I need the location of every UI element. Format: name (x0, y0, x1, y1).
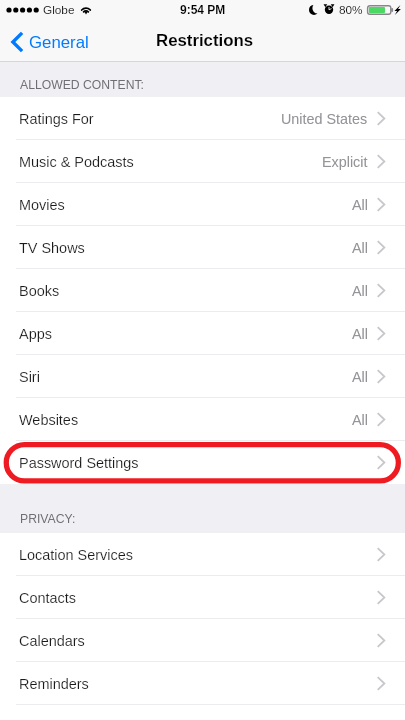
staticText: Reminders (19, 676, 89, 692)
staticText: All (352, 197, 368, 213)
staticText: Music & Podcasts (19, 154, 134, 170)
button[interactable]: Books (0, 269, 405, 312)
button[interactable]: Password Settings (0, 441, 405, 484)
button[interactable]: Calendars (0, 619, 405, 662)
staticText: All (352, 326, 368, 342)
staticText: Globe (43, 3, 75, 16)
staticText: Location Services (19, 547, 133, 563)
button[interactable]: TV Shows (0, 226, 405, 269)
staticText: PRIVACY: (20, 512, 76, 526)
staticText: All (352, 283, 368, 299)
button[interactable]: Movies (0, 183, 405, 226)
button[interactable]: Websites (0, 398, 405, 441)
staticText: 80% (339, 3, 363, 16)
staticText: United States (281, 111, 368, 127)
button[interactable]: Location Services (0, 533, 405, 576)
staticText: All (352, 369, 368, 385)
button[interactable]: Siri (0, 355, 405, 398)
staticText: Password Settings (19, 455, 139, 471)
staticText: ALLOWED CONTENT: (20, 78, 144, 92)
staticText: TV Shows (19, 240, 85, 256)
staticText: All (352, 412, 368, 428)
staticText: General (29, 33, 89, 52)
staticText: Movies (19, 197, 65, 213)
staticText: Restrictions (156, 31, 254, 50)
staticText: Contacts (19, 590, 76, 606)
button[interactable]: Contacts (0, 576, 405, 619)
button[interactable]: Back to General (8, 28, 95, 56)
button[interactable]: Music & Podcasts (0, 140, 405, 183)
staticText: Websites (19, 412, 79, 428)
staticText: Calendars (19, 633, 85, 649)
staticText: Explicit (322, 154, 368, 170)
button[interactable]: Reminders (0, 662, 405, 705)
staticText: Siri (19, 369, 40, 385)
staticText: Ratings For (19, 111, 94, 127)
button[interactable]: Ratings For (0, 97, 405, 140)
button[interactable]: Apps (0, 312, 405, 355)
staticText: Books (19, 283, 60, 299)
staticText: 9:54 PM (180, 3, 226, 16)
staticText: Apps (19, 326, 52, 342)
staticText: All (352, 240, 368, 256)
